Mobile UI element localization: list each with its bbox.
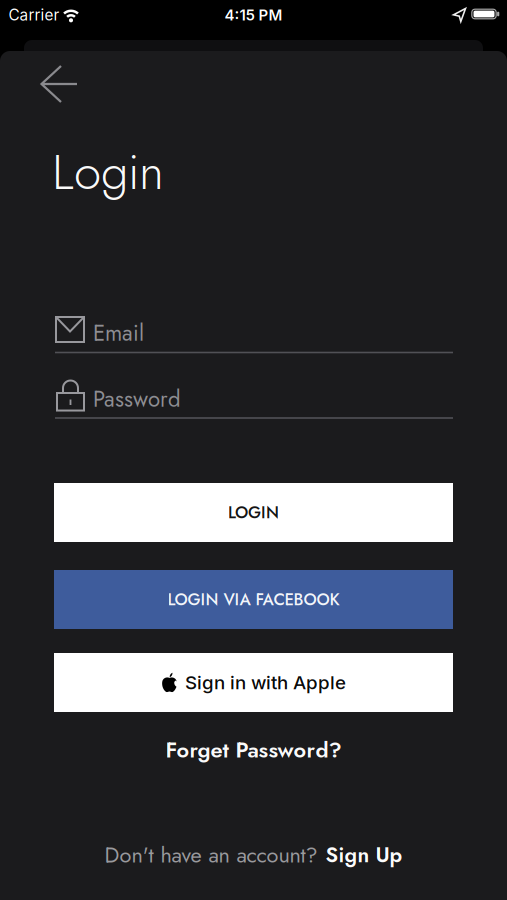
staticText: LOGIN xyxy=(228,501,279,524)
staticText: 4:15 PM xyxy=(224,6,282,24)
staticText: Login xyxy=(52,136,164,208)
staticText: Don't have an account? xyxy=(104,839,317,871)
staticText: LOGIN VIA FACEBOOK xyxy=(167,588,339,611)
staticText: Sign Up xyxy=(325,840,402,870)
button[interactable]: LOGIN VIA FACEBOOK xyxy=(54,570,453,629)
staticText: Carrier xyxy=(8,6,59,24)
button[interactable]: Sign in with Apple xyxy=(54,653,453,712)
staticText: Password xyxy=(93,383,181,415)
staticText: Forget Password? xyxy=(165,734,341,766)
button[interactable]: Forget Password? xyxy=(165,734,341,766)
button[interactable]: Sign Up xyxy=(325,840,402,870)
staticText: Sign in with Apple xyxy=(185,671,346,694)
button[interactable]: Back xyxy=(37,62,81,106)
button[interactable]: LOGIN xyxy=(54,483,453,542)
staticText: Email xyxy=(93,317,144,349)
